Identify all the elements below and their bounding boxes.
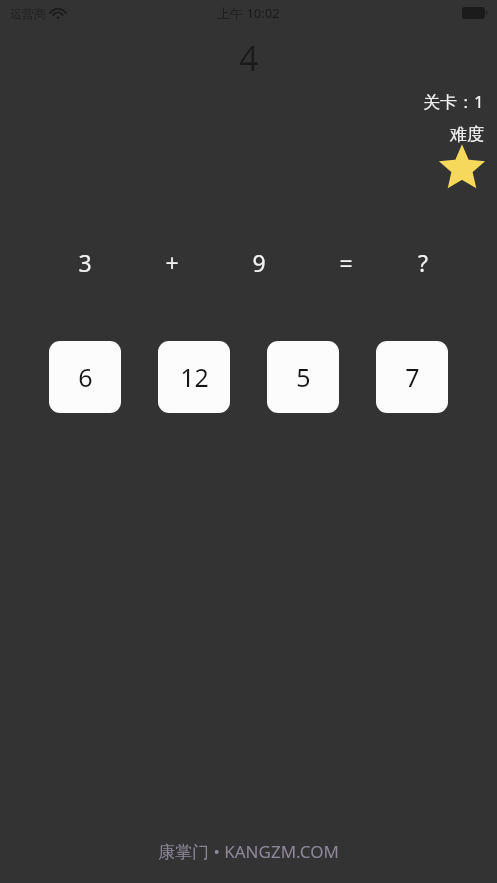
staticText: = <box>339 247 353 278</box>
staticText: 关卡：1 <box>423 90 484 113</box>
staticText: 3 <box>78 247 92 278</box>
staticText: + <box>165 247 179 278</box>
staticText: 运营商 <box>10 6 46 21</box>
staticText: 12 <box>180 360 209 394</box>
staticText: 上午 10:02 <box>217 4 280 22</box>
staticText: 5 <box>296 360 311 394</box>
staticText: 7 <box>405 360 420 394</box>
staticText: ? <box>418 247 428 278</box>
button[interactable]: 5 <box>267 341 339 413</box>
staticText: 难度 <box>450 124 484 145</box>
staticText: 康掌门 • KANGZM.COM <box>158 840 339 863</box>
button[interactable]: 7 <box>376 341 448 413</box>
staticText: 9 <box>252 247 266 278</box>
staticText: 6 <box>78 360 93 394</box>
button[interactable]: 12 <box>158 341 230 413</box>
button[interactable]: 6 <box>49 341 121 413</box>
staticText: 4 <box>239 35 259 81</box>
